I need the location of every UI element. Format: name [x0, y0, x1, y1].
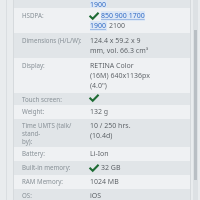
staticText: Time UMTS (talk/stand- — [22, 121, 88, 137]
button[interactable]: Weight: — [14, 105, 190, 119]
staticText: 32 GB — [101, 163, 121, 173]
button[interactable]: Dimensions (H/L/W): — [14, 33, 190, 58]
staticText: 132 g — [90, 107, 109, 117]
staticText: 1900 — [90, 0, 107, 8]
staticText: 1900 — [90, 21, 107, 31]
button[interactable]: Touch screen: — [14, 93, 190, 105]
staticText: Weight: — [22, 107, 45, 115]
staticText: Touch screen: — [22, 95, 62, 103]
staticText: iOS — [90, 191, 102, 198]
staticText: Dimensions (H/L/W): — [22, 36, 82, 44]
button[interactable]: 1900 — [14, 0, 190, 8]
button[interactable]: 850 900 1700 — [101, 11, 145, 21]
staticText: by): — [22, 137, 33, 145]
other: Supported — [90, 13, 98, 20]
staticText: OS: — [22, 191, 32, 198]
button[interactable]: Time UMTS (talk/stand- — [14, 119, 190, 147]
staticText: Battery: — [22, 149, 45, 157]
staticText: (10.4d) — [90, 131, 113, 141]
staticText: (16M) 640x1136px — [90, 71, 150, 81]
staticText: RAM Memory: — [22, 177, 64, 185]
button[interactable]: HSDPA: — [14, 8, 190, 33]
button[interactable]: 1900 — [90, 21, 107, 31]
button[interactable]: Built-in memory: — [14, 161, 190, 175]
staticText: 850 900 1700 — [101, 11, 145, 21]
button[interactable]: OS: — [14, 189, 190, 200]
button[interactable]: RAM Memory: — [14, 175, 190, 189]
staticText: 10 / 250 hrs. — [90, 121, 131, 131]
other: Supported — [90, 95, 98, 102]
staticText: (4.0") — [90, 81, 107, 91]
staticText: HSDPA: — [22, 11, 44, 19]
staticText: 2100 — [109, 21, 126, 31]
staticText: 124.4 x 59.2 x 9 — [90, 36, 141, 46]
staticText: Display: — [22, 61, 45, 69]
button[interactable]: Display: — [14, 58, 190, 93]
staticText: Built-in memory: — [22, 163, 71, 171]
other: Supported — [90, 165, 98, 172]
staticText: 1024 MB — [90, 177, 119, 187]
staticText: mm, vol. 66.3 cm³ — [90, 46, 149, 56]
button[interactable]: Battery: — [14, 147, 190, 161]
staticText: Li-Ion — [90, 149, 109, 159]
staticText: RETINA Color — [90, 61, 134, 71]
